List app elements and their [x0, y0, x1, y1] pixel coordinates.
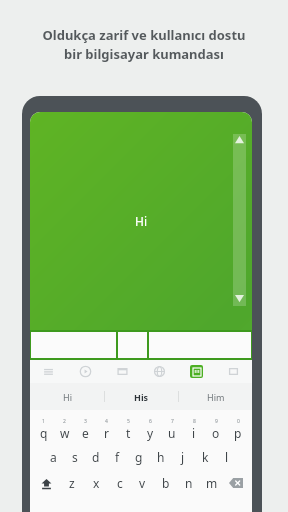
- staticText: 0: [237, 418, 240, 425]
- button[interactable]: 1: [33, 418, 54, 444]
- staticText: n: [185, 475, 193, 491]
- button[interactable]: 0: [227, 418, 249, 444]
- staticText: k: [202, 449, 209, 465]
- staticText: o: [212, 425, 220, 441]
- staticText: e: [82, 425, 89, 441]
- button[interactable]: 3: [75, 418, 96, 444]
- staticText: v: [139, 475, 146, 491]
- staticText: d: [92, 449, 100, 465]
- button[interactable]: Window: [104, 360, 141, 383]
- button[interactable]: Backspace: [223, 470, 249, 496]
- staticText: Hi: [63, 391, 72, 403]
- button[interactable]: k: [194, 444, 216, 470]
- button[interactable]: Him: [179, 383, 252, 410]
- button[interactable]: 9: [205, 418, 227, 444]
- button[interactable]: Browser: [141, 360, 178, 383]
- staticText: j: [181, 449, 185, 465]
- staticText: 1: [42, 418, 45, 425]
- staticText: 6: [149, 418, 152, 425]
- button[interactable]: His: [105, 383, 178, 410]
- staticText: i: [192, 425, 196, 441]
- staticText: 5: [127, 418, 130, 425]
- staticText: c: [117, 475, 123, 491]
- staticText: Him: [207, 391, 225, 403]
- staticText: 7: [171, 418, 174, 425]
- button[interactable]: 8: [183, 418, 205, 444]
- staticText: w: [60, 425, 70, 441]
- button[interactable]: b: [154, 470, 177, 496]
- staticText: 9: [215, 418, 218, 425]
- button[interactable]: 6: [139, 418, 161, 444]
- button[interactable]: s: [64, 444, 85, 470]
- staticText: r: [104, 425, 109, 441]
- button[interactable]: m: [200, 470, 223, 496]
- staticText: Hi: [135, 213, 147, 229]
- button[interactable]: Play: [67, 360, 104, 383]
- button[interactable]: l: [216, 444, 238, 470]
- staticText: 3: [84, 418, 87, 425]
- button[interactable]: d: [85, 444, 106, 470]
- staticText: y: [147, 425, 154, 441]
- button[interactable]: More: [215, 360, 252, 383]
- button[interactable]: f: [106, 444, 128, 470]
- button[interactable]: x: [84, 470, 108, 496]
- button[interactable]: c: [108, 470, 131, 496]
- staticText: h: [157, 449, 165, 465]
- staticText: z: [69, 475, 75, 491]
- button[interactable]: j: [172, 444, 194, 470]
- button[interactable]: 2: [54, 418, 75, 444]
- staticText: p: [234, 425, 242, 441]
- staticText: His: [134, 391, 149, 403]
- button[interactable]: Hi: [30, 383, 104, 410]
- button[interactable]: a: [43, 444, 64, 470]
- button[interactable]: v: [131, 470, 154, 496]
- staticText: f: [115, 449, 120, 465]
- staticText: 8: [193, 418, 196, 425]
- button[interactable]: Menu: [30, 360, 67, 383]
- staticText: Oldukça zarif ve kullanıcı dostu bir bil…: [12, 26, 276, 63]
- button[interactable]: 7: [161, 418, 183, 444]
- staticText: a: [50, 449, 57, 465]
- staticText: x: [93, 475, 100, 491]
- button[interactable]: z: [60, 470, 84, 496]
- button[interactable]: 5: [117, 418, 139, 444]
- staticText: l: [225, 449, 229, 465]
- staticText: s: [72, 449, 78, 465]
- staticText: m: [206, 475, 218, 491]
- other: Scroll bar: [233, 134, 246, 306]
- button[interactable]: Shift: [33, 470, 60, 496]
- staticText: u: [168, 425, 176, 441]
- button[interactable]: 4: [96, 418, 117, 444]
- staticText: 4: [105, 418, 108, 425]
- button[interactable]: n: [177, 470, 200, 496]
- button[interactable]: h: [150, 444, 172, 470]
- staticText: 2: [63, 418, 66, 425]
- button[interactable]: Keyboard: [190, 365, 203, 378]
- staticText: t: [126, 425, 131, 441]
- staticText: q: [40, 425, 48, 441]
- staticText: g: [135, 449, 143, 465]
- button[interactable]: g: [128, 444, 150, 470]
- staticText: b: [162, 475, 170, 491]
